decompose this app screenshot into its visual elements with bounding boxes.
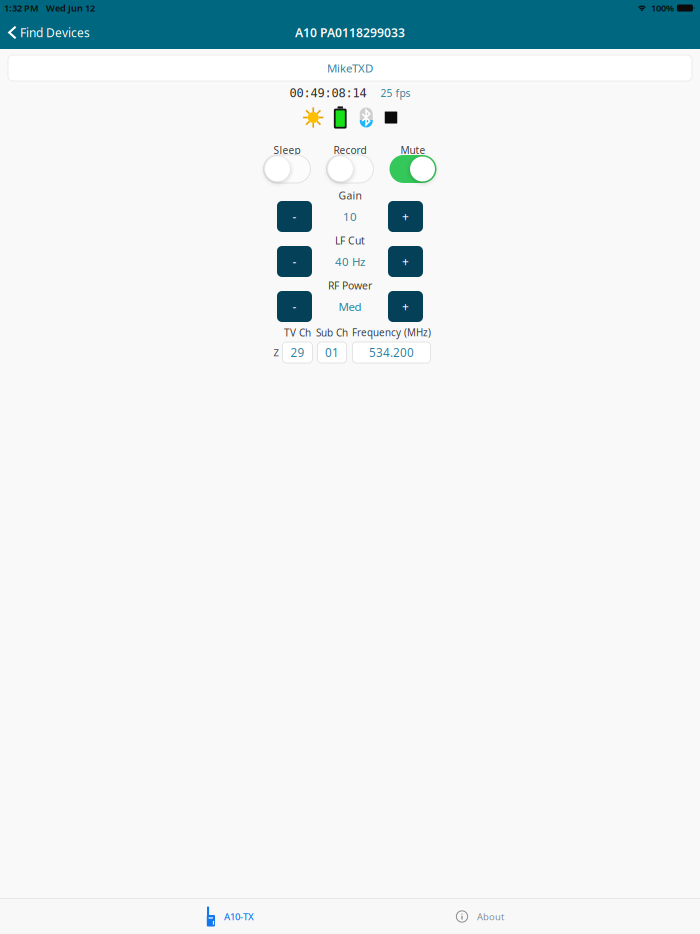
button[interactable]: Decrease Gain xyxy=(277,201,312,232)
staticText: + xyxy=(402,253,409,270)
staticText: Frequency (MHz) xyxy=(352,326,431,339)
staticText: 100% xyxy=(651,2,674,14)
button[interactable]: Decrease RF Power xyxy=(277,291,312,322)
staticText: About xyxy=(477,910,504,923)
button[interactable]: Decrease LF Cut xyxy=(277,246,312,277)
staticText: MikeTXD xyxy=(327,60,373,76)
staticText: + xyxy=(402,208,409,225)
staticText: 534.200 xyxy=(369,344,414,360)
button[interactable]: About xyxy=(350,899,700,934)
button[interactable]: Find Devices xyxy=(0,16,96,49)
staticText: Mute xyxy=(400,143,425,157)
button[interactable]: Sleep xyxy=(263,155,310,183)
button[interactable]: Record xyxy=(326,155,373,183)
staticText: - xyxy=(292,298,296,315)
staticText: + xyxy=(402,298,409,315)
staticText: 00:49:08:14 xyxy=(289,86,366,100)
staticText: Gain xyxy=(338,188,361,203)
button[interactable]: 534.200 xyxy=(352,342,430,363)
staticText: Find Devices xyxy=(20,24,90,41)
staticText: RF Power xyxy=(328,278,372,293)
staticText: 29 xyxy=(290,344,304,360)
button[interactable]: MikeTXD xyxy=(8,55,692,81)
button[interactable]: 01 xyxy=(317,342,346,363)
staticText: 1:32 PM xyxy=(4,2,39,14)
staticText: Med xyxy=(338,299,361,314)
staticText: A10 PA0118299033 xyxy=(295,24,405,41)
staticText: Record xyxy=(333,143,366,157)
staticText: A10-TX xyxy=(224,910,254,923)
button[interactable]: Increase LF Cut xyxy=(388,246,423,277)
staticText: TV Ch xyxy=(284,326,311,339)
staticText: 01 xyxy=(325,344,339,360)
staticText: 25 fps xyxy=(380,86,410,100)
button[interactable]: 29 xyxy=(282,342,312,363)
button[interactable]: A10-TX xyxy=(0,899,350,934)
staticText: Sleep xyxy=(273,143,300,157)
button[interactable]: Increase Gain xyxy=(388,201,423,232)
staticText: LF Cut xyxy=(335,233,365,248)
staticText: 40 Hz xyxy=(335,254,365,269)
button[interactable]: Mute xyxy=(389,155,436,183)
staticText: - xyxy=(292,208,296,225)
staticText: Sub Ch xyxy=(316,326,348,339)
staticText: Wed Jun 12 xyxy=(46,2,95,14)
staticText: - xyxy=(292,253,296,270)
staticText: 10 xyxy=(343,209,357,224)
button[interactable]: Increase RF Power xyxy=(388,291,423,322)
staticText: Z xyxy=(273,346,278,359)
